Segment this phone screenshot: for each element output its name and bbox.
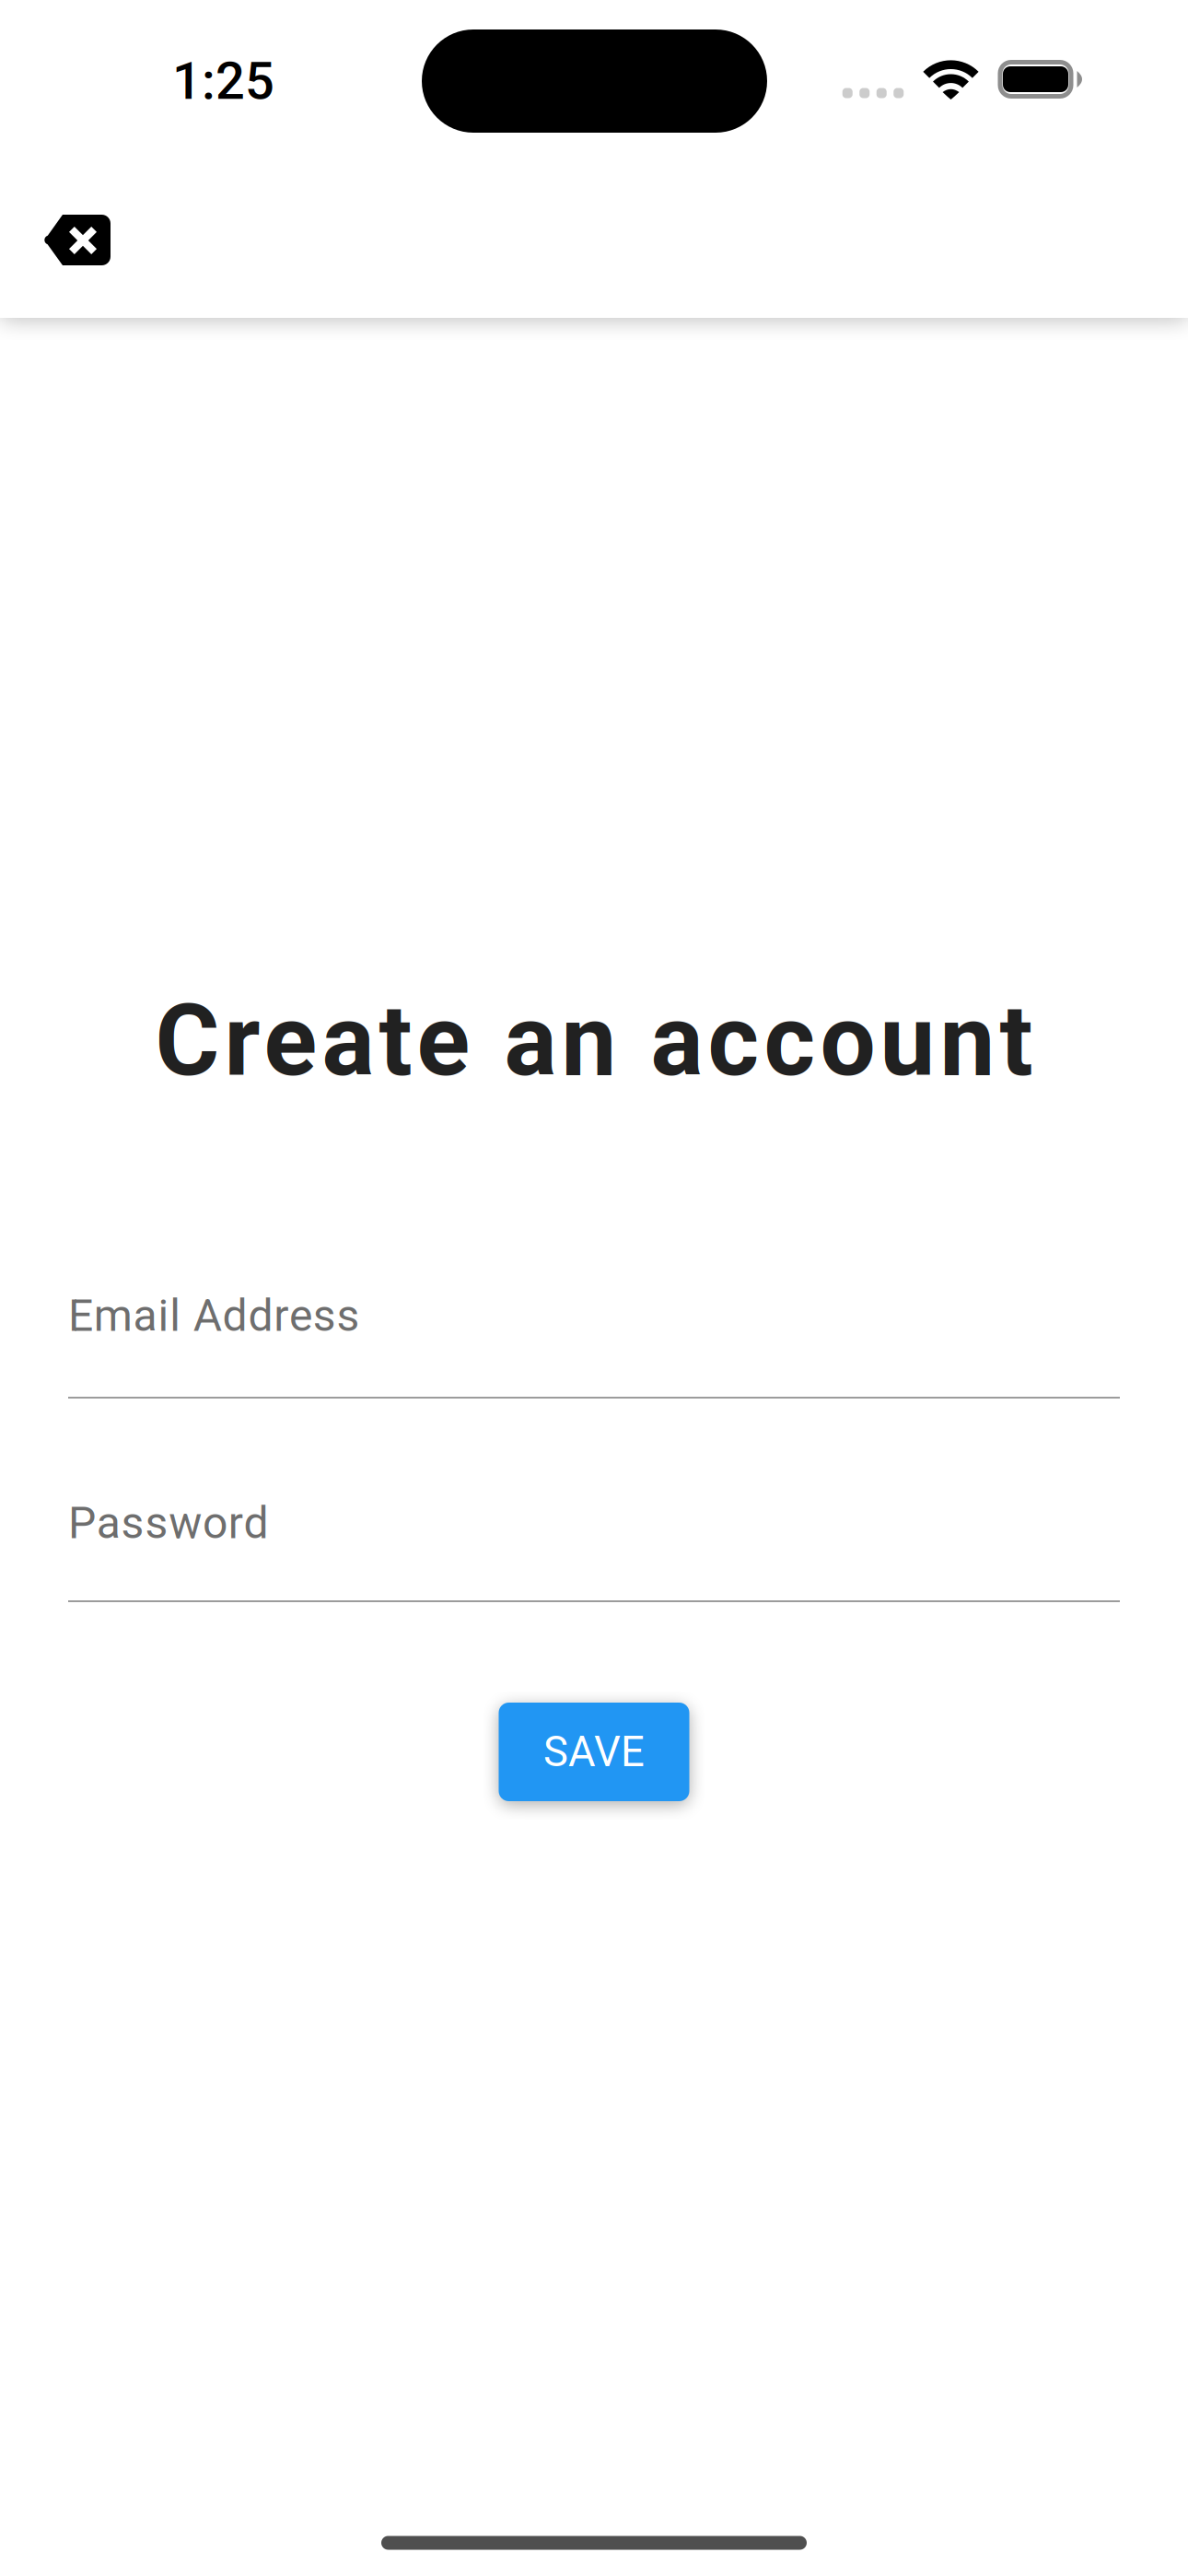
button[interactable]: Password [68, 1484, 1120, 1602]
staticText: 1:25 [172, 51, 274, 111]
staticText: SAVE [543, 1727, 645, 1776]
button[interactable]: Close [17, 187, 138, 293]
staticText: Email Address [68, 1290, 360, 1342]
staticText: Create an account [155, 984, 1033, 1099]
button[interactable]: Email Address [68, 1281, 1120, 1399]
button[interactable]: SAVE [499, 1703, 689, 1801]
staticText: Password [68, 1497, 269, 1549]
